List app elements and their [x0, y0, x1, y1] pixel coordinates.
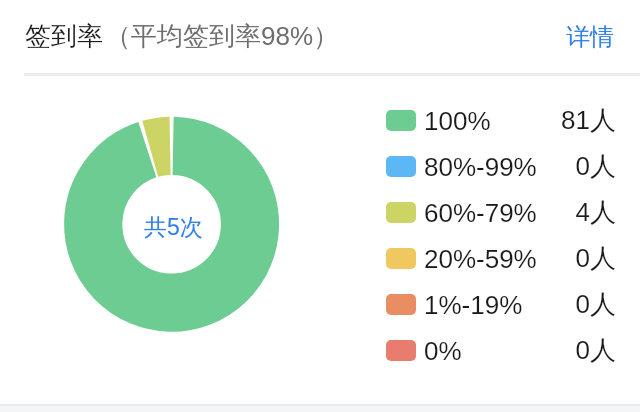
- button[interactable]: 1%-19%: [386, 281, 616, 327]
- staticText: （平均签到率98%）: [105, 20, 340, 53]
- staticText: 100%: [424, 106, 491, 135]
- staticText: 81人: [561, 104, 616, 137]
- other: 签到率环形图: [0, 0, 640, 412]
- staticText: 0人: [575, 288, 616, 321]
- staticText: 0人: [575, 242, 616, 275]
- staticText: 1%-19%: [424, 290, 523, 319]
- button[interactable]: 0%: [386, 327, 616, 373]
- staticText: 共5次: [144, 213, 203, 242]
- staticText: 80%-99%: [424, 152, 537, 181]
- button[interactable]: 详情: [564, 16, 616, 58]
- staticText: 0%: [424, 336, 462, 365]
- staticText: 20%-59%: [424, 244, 537, 273]
- staticText: 4人: [575, 196, 616, 229]
- staticText: 签到率: [25, 20, 103, 53]
- staticText: 0人: [575, 334, 616, 367]
- button[interactable]: 80%-99%: [386, 143, 616, 189]
- button[interactable]: 60%-79%: [386, 189, 616, 235]
- staticText: 0人: [575, 150, 616, 183]
- button[interactable]: 20%-59%: [386, 235, 616, 281]
- staticText: 60%-79%: [424, 198, 537, 227]
- button[interactable]: 100%: [386, 97, 616, 143]
